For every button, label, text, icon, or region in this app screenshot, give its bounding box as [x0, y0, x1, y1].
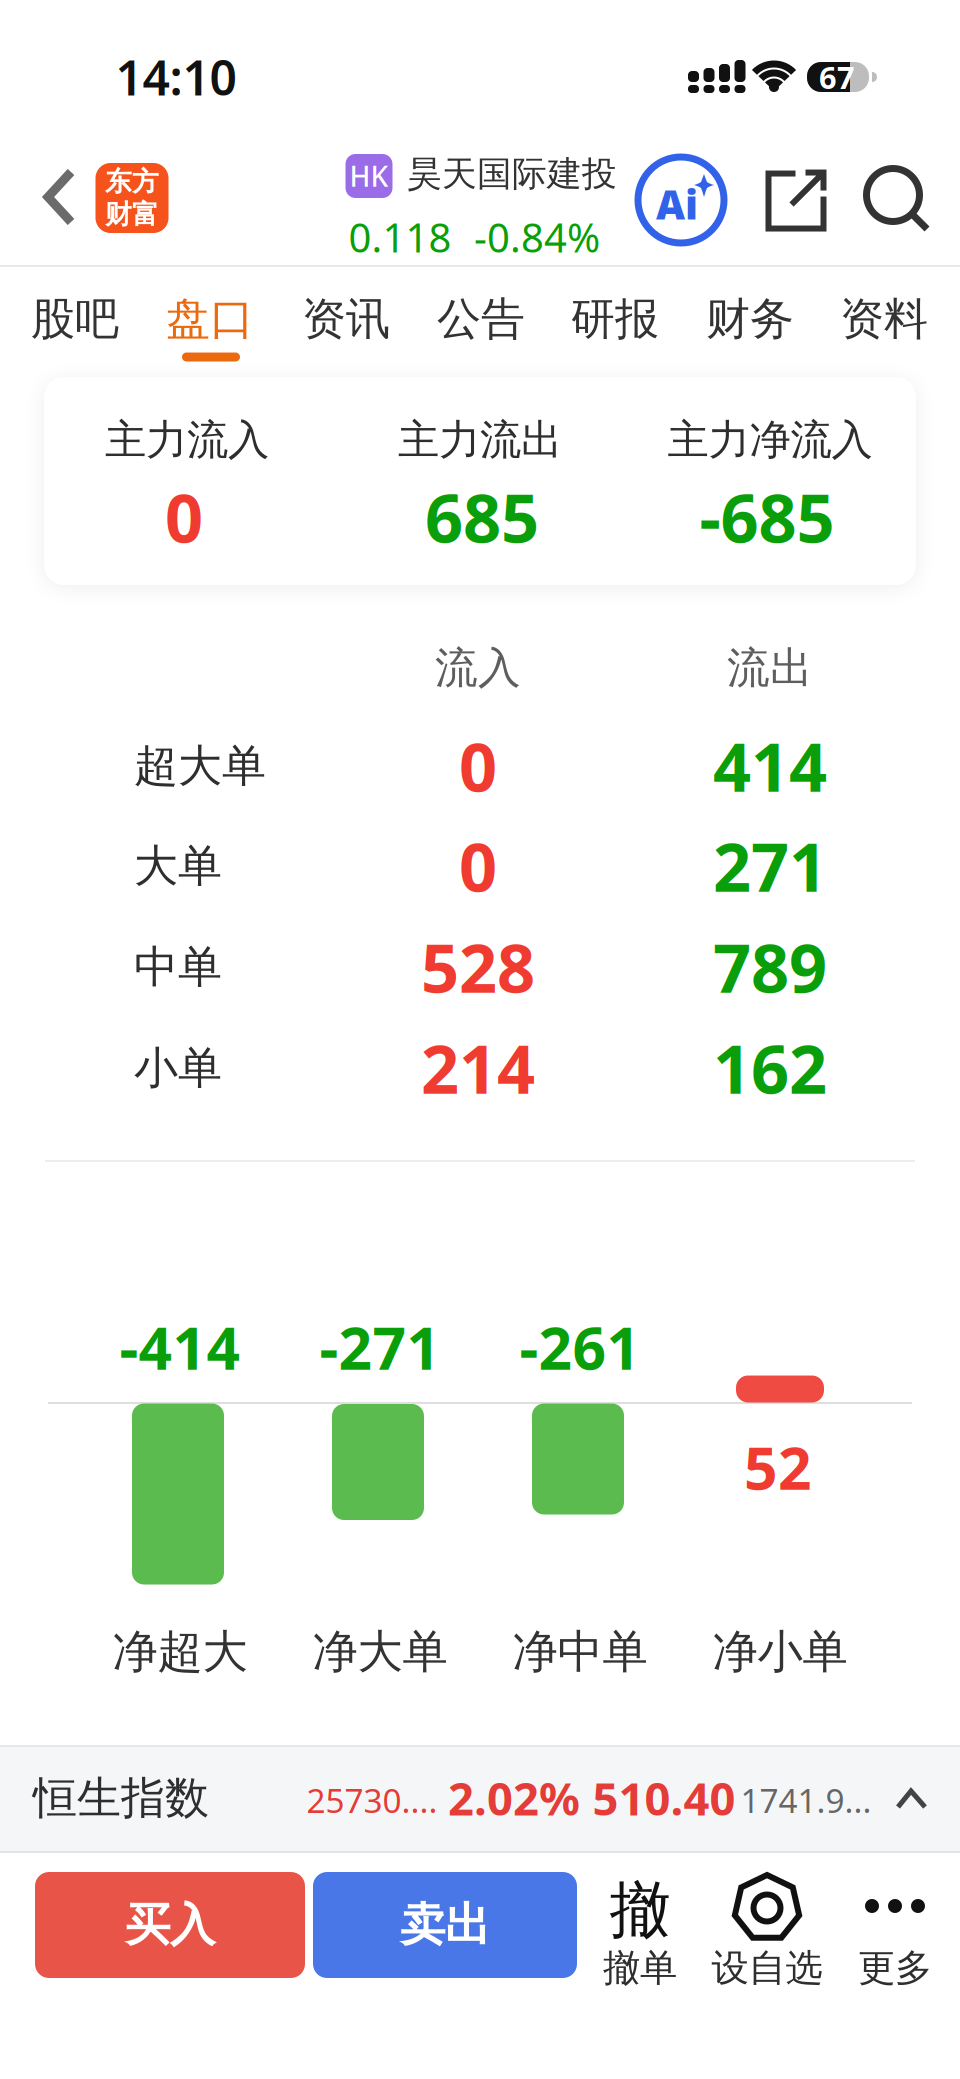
button[interactable]: 公告 — [421, 279, 541, 359]
staticText: 设自选 — [711, 1945, 822, 1991]
staticText: 昊天国际建投 — [407, 153, 617, 195]
staticText: 2.02% — [448, 1768, 580, 1828]
staticText: 大单 — [134, 839, 222, 893]
button[interactable]: 买入 — [35, 1872, 305, 1978]
staticText: 公告 — [437, 292, 525, 346]
staticText: 中单 — [134, 940, 222, 994]
staticText: 财务 — [706, 292, 794, 346]
staticText: 510.40 — [592, 1768, 735, 1828]
staticText: 214 — [421, 1024, 535, 1112]
staticText: 股吧 — [31, 292, 119, 346]
staticText: 0 — [165, 473, 203, 561]
staticText: -261 — [519, 1308, 640, 1386]
staticText: 1741.9... — [740, 1778, 871, 1822]
staticText: 14:10 — [115, 45, 236, 109]
staticText: 685 — [425, 473, 539, 561]
button[interactable] — [765, 170, 826, 231]
staticText: 恒生指数 — [33, 1771, 209, 1825]
button[interactable]: 股吧 — [15, 279, 135, 359]
button[interactable]: 东方 — [95, 163, 168, 233]
staticText: -414 — [119, 1308, 240, 1386]
button[interactable]: 更多 — [835, 1865, 955, 1995]
staticText: 52 — [744, 1428, 812, 1506]
button[interactable]: 恒生指数 — [0, 1745, 960, 1853]
staticText: 67 — [819, 57, 855, 97]
staticText: 净大单 — [312, 1624, 447, 1680]
staticText: -0.84% — [474, 210, 600, 263]
staticText: 盘口 — [166, 292, 254, 346]
staticText: 财富 — [105, 198, 159, 231]
button[interactable]: 盘口 — [150, 279, 270, 359]
staticText: 卖出 — [400, 1897, 490, 1953]
staticText: 更多 — [858, 1945, 932, 1991]
staticText: 撤 — [609, 1872, 670, 1948]
button[interactable]: 财务 — [690, 279, 810, 359]
staticText: HK — [349, 157, 388, 195]
button[interactable] — [45, 169, 75, 225]
button[interactable]: 撤 — [582, 1865, 698, 1995]
button[interactable]: 设自选 — [697, 1865, 837, 1995]
button[interactable] — [866, 168, 928, 230]
button[interactable]: 资料 — [824, 279, 944, 359]
button[interactable]: Ai — [638, 157, 724, 243]
staticText: 789 — [713, 923, 827, 1011]
button[interactable]: 研报 — [555, 279, 675, 359]
staticText: Ai — [656, 177, 698, 230]
staticText: 主力流出 — [398, 415, 562, 465]
staticText: 25730.... — [306, 1778, 437, 1822]
staticText: -271 — [319, 1308, 440, 1386]
staticText: 162 — [713, 1024, 827, 1112]
button[interactable]: 卖出 — [313, 1872, 577, 1978]
staticText: 271 — [713, 822, 827, 910]
staticText: 528 — [421, 923, 535, 1011]
staticText: 0.118 — [348, 210, 451, 263]
staticText: -685 — [699, 473, 834, 561]
button[interactable]: 资讯 — [286, 279, 406, 359]
staticText: 小单 — [134, 1041, 222, 1095]
staticText: 流出 — [727, 642, 813, 694]
staticText: 净小单 — [712, 1624, 847, 1680]
staticText: 主力流入 — [105, 415, 269, 465]
staticText: 净超大 — [112, 1624, 247, 1680]
staticText: 0 — [459, 822, 497, 910]
staticText: 414 — [713, 722, 827, 810]
staticText: 流入 — [435, 642, 521, 694]
staticText: 资讯 — [302, 292, 390, 346]
staticText: 撤单 — [603, 1945, 677, 1991]
staticText: 东方 — [105, 165, 159, 198]
staticText: 超大单 — [134, 739, 266, 793]
staticText: 主力净流入 — [667, 415, 872, 465]
staticText: 资料 — [840, 292, 928, 346]
staticText: 研报 — [571, 292, 659, 346]
staticText: 0 — [459, 722, 497, 810]
staticText: 买入 — [125, 1897, 215, 1953]
staticText: 净中单 — [512, 1624, 647, 1680]
